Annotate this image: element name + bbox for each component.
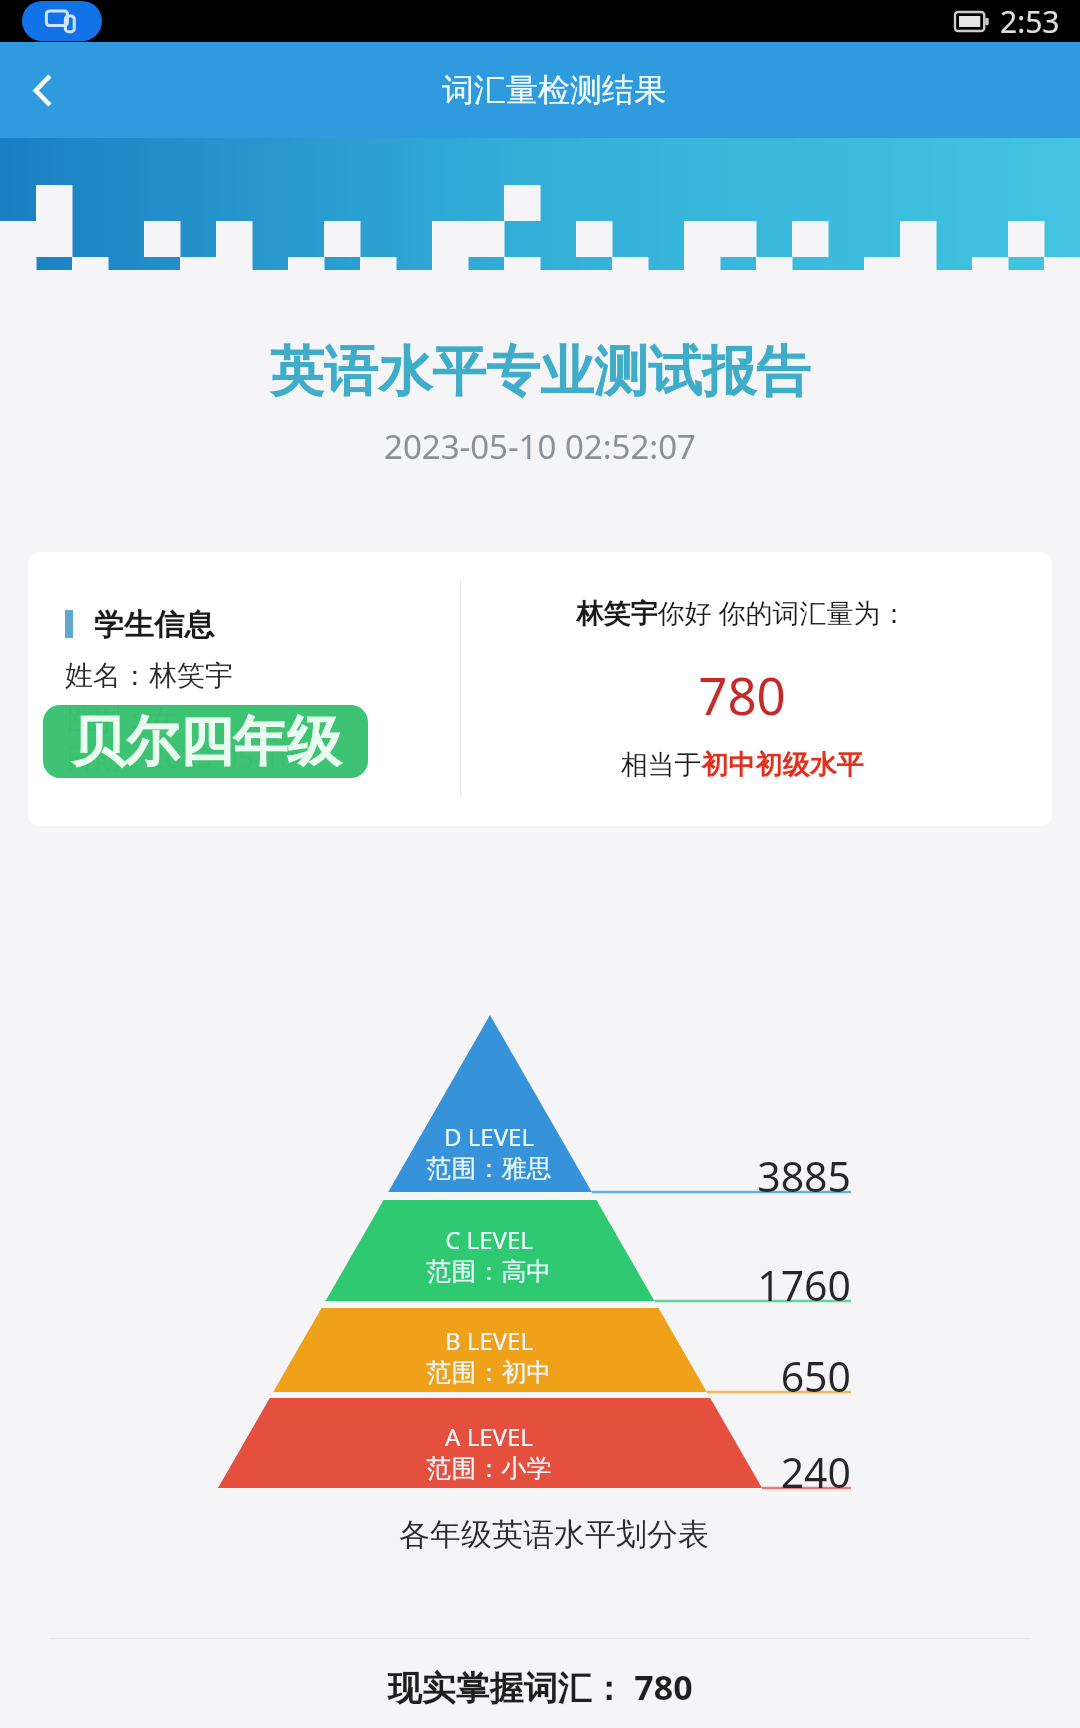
staticText: 650 [651, 1348, 851, 1404]
staticText: B LEVEL [289, 1324, 689, 1357]
staticText: 现实掌握词汇： 780 [0, 1664, 1080, 1710]
button[interactable]: 贝尔四年级 [43, 705, 368, 778]
staticText: 林笑宇你好 你的词汇量为： [446, 594, 1038, 631]
staticText: 学生信息 [94, 606, 214, 644]
staticText: 词汇量检测结果 [14, 70, 1080, 110]
staticText: 范围：小学 [289, 1453, 689, 1484]
staticText: 贝尔四年级 [71, 708, 341, 776]
staticText: 日期：2023-05-10 [65, 738, 296, 776]
staticText: A LEVEL [289, 1420, 689, 1453]
staticText: C LEVEL [289, 1223, 689, 1256]
button[interactable]: Back [12, 59, 74, 121]
staticText: 相当于初中初级水平 [446, 748, 1038, 782]
staticText: 范围：初中 [289, 1357, 689, 1388]
staticText: 1760 [651, 1257, 851, 1313]
staticText: 2023-05-10 02:52:07 [0, 424, 1080, 469]
staticText: 780 [446, 660, 1038, 729]
staticText: 范围：高中 [289, 1256, 689, 1287]
staticText: 3885 [651, 1148, 851, 1204]
staticText: 2:53 [1000, 1, 1060, 42]
staticText: 240 [651, 1444, 851, 1500]
staticText: 性别：女 [65, 702, 177, 737]
staticText: 姓名：林笑宇 [65, 658, 233, 693]
button[interactable]: Cast screen [22, 1, 102, 41]
staticText: 各年级英语水平划分表 [14, 1515, 1080, 1554]
staticText: 范围：雅思 [289, 1153, 689, 1184]
staticText: D LEVEL [289, 1120, 689, 1153]
staticText: 英语水平专业测试报告 [0, 338, 1080, 406]
